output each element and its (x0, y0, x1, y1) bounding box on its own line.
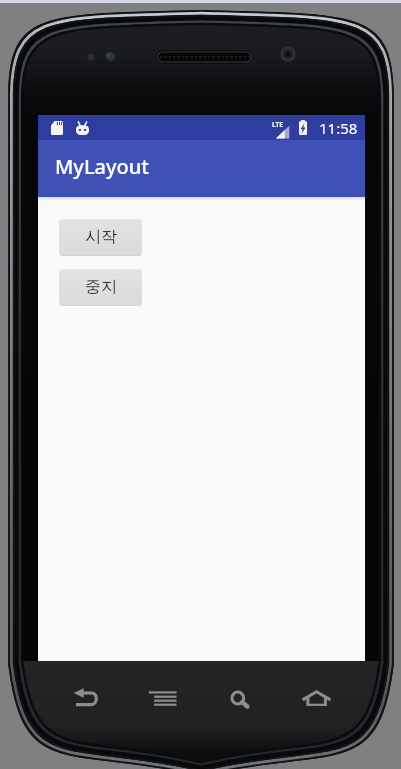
button[interactable]: Back (68, 686, 104, 714)
button[interactable]: Menu (144, 686, 181, 712)
button[interactable]: 중지 (59, 269, 142, 306)
staticText: LTE (272, 120, 283, 129)
staticText: MyLayout (55, 153, 150, 180)
button[interactable]: MyLayout (38, 140, 365, 197)
button[interactable]: 시작 (59, 219, 142, 256)
button[interactable]: Home (298, 686, 334, 712)
staticText: 시작 (85, 227, 117, 247)
staticText: 11:58 (319, 118, 358, 138)
button[interactable]: Search (228, 688, 256, 712)
staticText: 중지 (85, 277, 117, 297)
